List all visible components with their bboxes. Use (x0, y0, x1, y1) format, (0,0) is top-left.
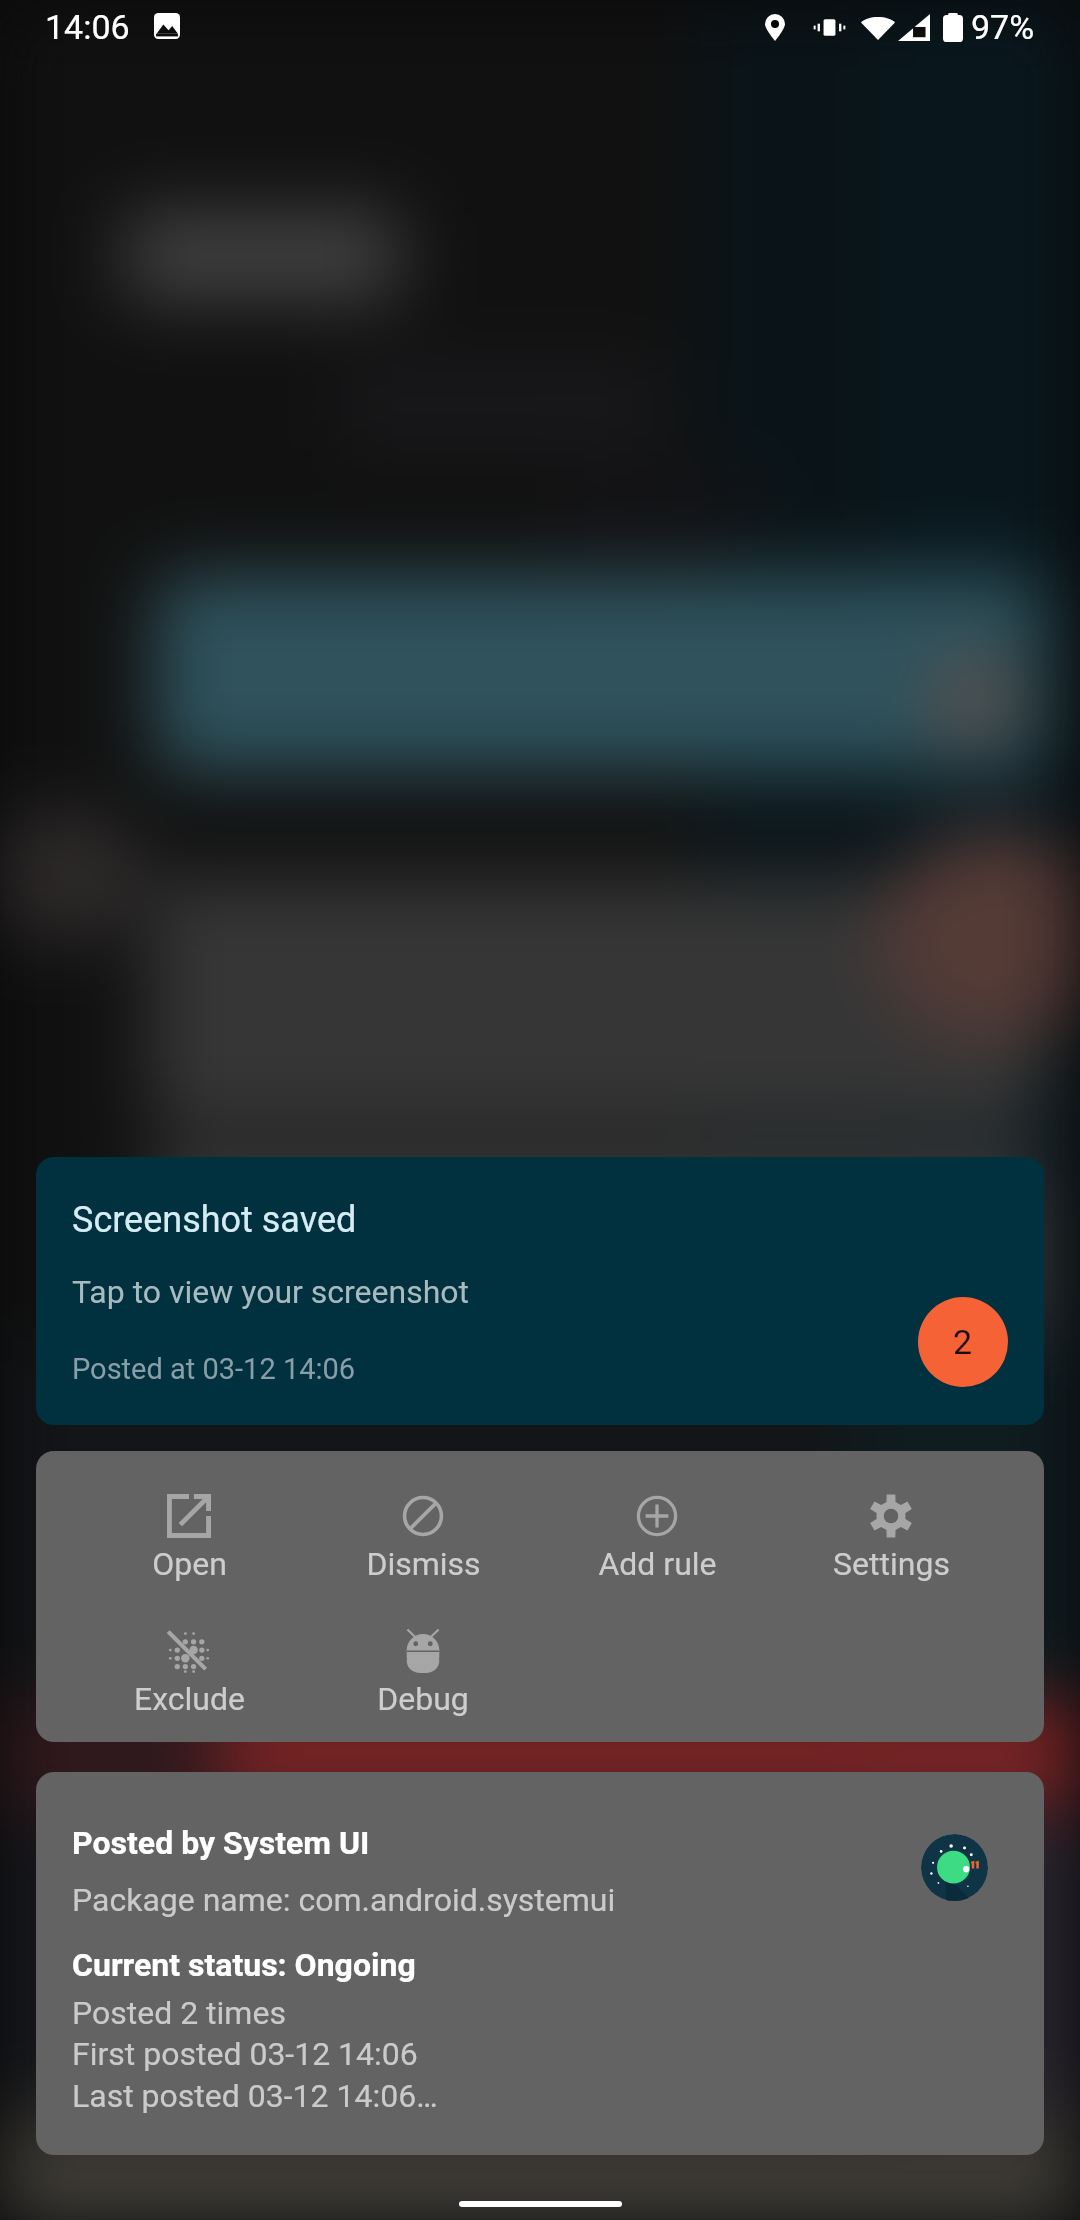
staticText: Posted 2 times First posted 03-12 14:06 … (72, 1994, 438, 2115)
staticText: Tap to view your screenshot (72, 1273, 470, 1311)
staticText: Posted at 03-12 14:06 (72, 1352, 356, 1386)
staticText: Debug (377, 1680, 469, 1718)
staticText: Add rule (598, 1545, 717, 1583)
staticText: Exclude (134, 1680, 245, 1718)
staticText: 14:06 (45, 7, 130, 47)
button[interactable]: Settings (774, 1451, 1008, 1586)
button[interactable]: Posted by System UI (36, 1772, 1044, 2155)
button[interactable]: Exclude (72, 1586, 306, 1721)
staticText: Settings (833, 1545, 950, 1583)
staticText: Screenshot saved (72, 1199, 357, 1241)
staticText: Open (152, 1545, 227, 1583)
staticText: 97% (971, 7, 1035, 47)
staticText: Package name: com.android.systemui (72, 1881, 616, 1919)
staticText: Posted by System UI (72, 1824, 370, 1862)
button[interactable]: Add rule (540, 1451, 774, 1586)
button[interactable]: Open (72, 1451, 306, 1586)
button[interactable]: Debug (306, 1586, 540, 1721)
staticText: Dismiss (366, 1545, 481, 1583)
button[interactable]: Screenshot saved (36, 1157, 1044, 1425)
button[interactable]: 2 (918, 1297, 1008, 1387)
staticText: Current status: Ongoing (72, 1946, 416, 1984)
button[interactable]: Dismiss (306, 1451, 540, 1586)
staticText: 2 (953, 1322, 973, 1362)
